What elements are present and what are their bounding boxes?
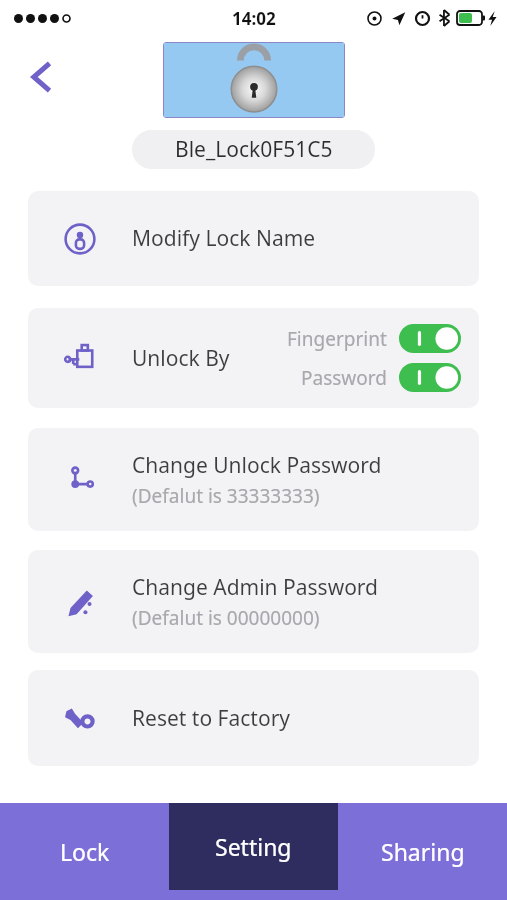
staticText: Modify Lock Name xyxy=(132,224,316,253)
staticText: Sharing xyxy=(381,836,465,867)
button[interactable]: Reset to Factory xyxy=(28,670,479,766)
staticText: Lock xyxy=(60,836,110,867)
button[interactable]: Change Admin Password xyxy=(28,550,479,653)
staticText: Reset to Factory xyxy=(132,704,291,733)
button[interactable]: Ble_Lock0F51C5 xyxy=(132,130,375,169)
staticText: Setting xyxy=(215,831,292,862)
button[interactable]: Change Unlock Password xyxy=(28,428,479,531)
staticText: (Defalut is 33333333) xyxy=(132,483,320,509)
button[interactable]: Lock image xyxy=(163,42,345,118)
button[interactable]: Password toggle xyxy=(399,363,461,392)
button[interactable]: Setting xyxy=(169,803,338,890)
staticText: Fingerprint xyxy=(287,326,387,352)
button[interactable]: Modify Lock Name xyxy=(28,191,479,286)
button[interactable]: Fingerprint toggle xyxy=(399,324,461,353)
staticText: Unlock By xyxy=(132,344,230,373)
staticText: Change Unlock Password xyxy=(132,451,382,480)
button[interactable]: Back xyxy=(12,48,70,106)
staticText: (Defalut is 00000000) xyxy=(132,605,320,631)
staticText: 14:02 xyxy=(232,7,276,30)
staticText: Change Admin Password xyxy=(132,573,379,602)
button[interactable]: Sharing xyxy=(338,803,507,900)
button[interactable]: Unlock By xyxy=(28,308,479,408)
staticText: Ble_Lock0F51C5 xyxy=(175,135,333,164)
button[interactable]: Lock xyxy=(0,803,169,900)
staticText: Password xyxy=(301,365,387,391)
